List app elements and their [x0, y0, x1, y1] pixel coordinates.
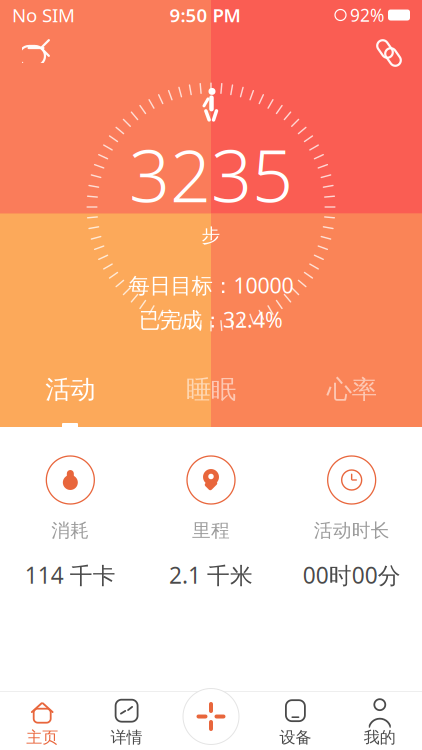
button[interactable]: 详情 — [84, 692, 169, 750]
button[interactable]: 活动时长 — [281, 455, 422, 590]
staticText: 9:50 PM — [169, 3, 240, 27]
button[interactable]: 消耗 — [0, 455, 141, 590]
staticText: 心率 — [327, 374, 377, 405]
staticText: 每日目标：10000 — [128, 271, 293, 299]
button[interactable]: 睡眠 — [141, 368, 281, 411]
staticText: 已完成：32.4% — [139, 305, 283, 334]
staticText: 我的 — [364, 728, 396, 747]
button[interactable]: 主页 — [0, 692, 84, 750]
button[interactable]: 心率 — [281, 368, 422, 411]
staticText: 详情 — [111, 728, 143, 747]
button[interactable]: 我的 — [338, 692, 422, 750]
staticText: 设备 — [279, 728, 311, 747]
staticText: 活动时长 — [314, 519, 390, 542]
button[interactable]: Link device — [364, 30, 414, 76]
staticText: 消耗 — [51, 519, 89, 542]
staticText: No SIM — [12, 3, 75, 27]
button[interactable]: 活动 — [0, 368, 141, 411]
staticText: 主页 — [26, 728, 58, 747]
button[interactable]: Add — [183, 688, 239, 744]
staticText: 步 — [201, 224, 220, 247]
staticText: 睡眠 — [186, 374, 236, 405]
staticText: 活动 — [45, 374, 95, 405]
button[interactable]: Share — [8, 30, 62, 76]
staticText: 里程 — [192, 519, 230, 542]
staticText: 3235 — [129, 126, 293, 222]
staticText: 2.1 千米 — [169, 560, 253, 590]
staticText: 00时00分 — [303, 560, 401, 590]
staticText: 114 千卡 — [25, 560, 116, 590]
staticText: 92% — [350, 3, 384, 26]
button[interactable]: 设备 — [253, 692, 338, 750]
button[interactable]: 里程 — [141, 455, 281, 590]
